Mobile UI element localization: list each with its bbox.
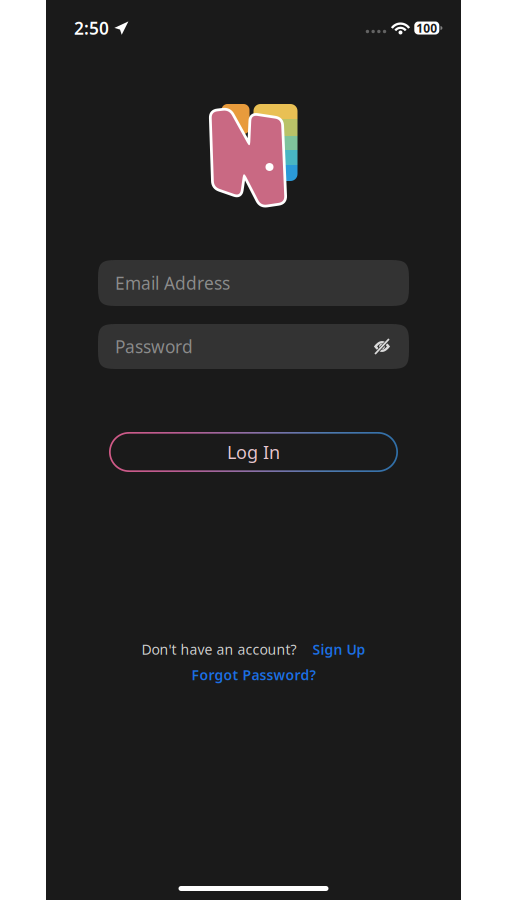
button[interactable]: Show password: [365, 329, 399, 363]
staticText: Don't have an account?: [141, 640, 296, 659]
button[interactable]: Forgot Password?: [191, 666, 315, 684]
staticText: Email Address: [115, 271, 230, 294]
button[interactable]: Log In: [109, 432, 398, 472]
button[interactable]: Email Address: [98, 260, 409, 306]
staticText: Forgot Password?: [191, 666, 315, 684]
staticText: Password: [115, 335, 193, 358]
staticText: Sign Up: [312, 640, 365, 659]
staticText: Log In: [227, 440, 280, 464]
staticText: 2:50: [74, 16, 109, 39]
button[interactable]: Sign Up: [296, 640, 365, 659]
staticText: 100: [416, 20, 437, 36]
